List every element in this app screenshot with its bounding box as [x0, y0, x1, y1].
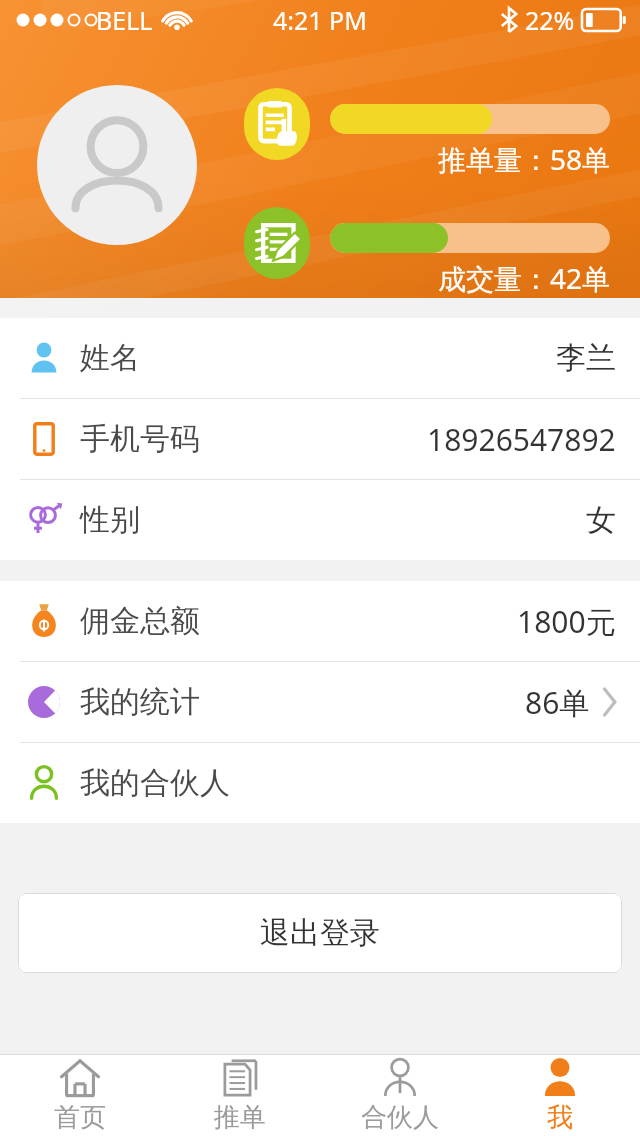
staticText: 我	[547, 1101, 573, 1134]
button[interactable]: 姓名	[0, 318, 640, 398]
button[interactable]: 佣金总额	[0, 581, 640, 661]
staticText: 女	[586, 501, 616, 539]
button[interactable]: 我的统计	[0, 662, 640, 742]
button[interactable]: 推单	[160, 1055, 320, 1136]
staticText: BELL	[96, 3, 153, 37]
button[interactable]: 合伙人	[320, 1055, 480, 1136]
staticText: 佣金总额	[80, 602, 200, 640]
staticText: 推单量：58单	[330, 140, 610, 178]
staticText: 4:21 PM	[273, 3, 367, 37]
staticText: 合伙人	[361, 1101, 439, 1134]
staticText: 退出登录	[260, 914, 380, 952]
button[interactable]: 我	[480, 1055, 640, 1136]
staticText: 性别	[80, 501, 140, 539]
other: Pushed orders	[244, 88, 310, 160]
staticText: 推单	[214, 1101, 266, 1134]
staticText: 我的统计	[80, 683, 200, 721]
staticText: 我的合伙人	[80, 764, 230, 802]
button[interactable]: 性别	[0, 480, 640, 560]
other: Closed orders	[244, 207, 310, 279]
button[interactable]: 首页	[0, 1055, 160, 1136]
staticText: 姓名	[80, 339, 140, 377]
button[interactable]: Profile photo	[37, 85, 197, 245]
staticText: 86单	[525, 682, 590, 723]
staticText: 22%	[525, 3, 575, 37]
staticText: 成交量：42单	[330, 259, 610, 297]
staticText: 手机号码	[80, 420, 200, 458]
staticText: 18926547892	[427, 419, 616, 460]
button[interactable]: 退出登录	[18, 893, 622, 973]
button[interactable]: 手机号码	[0, 399, 640, 479]
staticText: 李兰	[556, 339, 616, 377]
button[interactable]: 我的合伙人	[0, 743, 640, 823]
staticText: 首页	[54, 1101, 106, 1134]
staticText: 1800元	[517, 601, 616, 642]
